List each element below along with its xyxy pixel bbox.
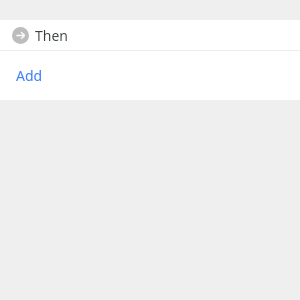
staticText: Add [16,66,43,85]
other: Then [12,27,29,44]
button[interactable]: Then [0,20,300,50]
button[interactable]: Add [0,51,300,100]
staticText: Then [35,26,68,45]
